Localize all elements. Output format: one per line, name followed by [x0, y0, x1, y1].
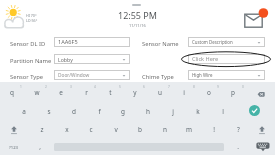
button[interactable]: z	[31, 122, 53, 136]
button[interactable]: d	[63, 104, 85, 118]
staticText: y	[133, 88, 137, 97]
staticText: Chime Type	[142, 73, 174, 81]
staticText: High Wire	[192, 72, 213, 78]
staticText: 2	[45, 85, 47, 89]
button[interactable]: .	[227, 139, 249, 153]
staticText: l	[222, 107, 224, 116]
staticText: Click Here	[192, 55, 219, 63]
button[interactable]: l	[212, 104, 234, 118]
staticText: 3	[70, 85, 72, 89]
staticText: Lobby	[58, 56, 73, 63]
button[interactable]: i	[173, 85, 195, 99]
button[interactable]: e	[50, 85, 72, 99]
button[interactable]: High Wire	[188, 70, 265, 80]
staticText: ,	[39, 142, 41, 151]
staticText: s	[47, 107, 51, 116]
button[interactable]: h	[137, 104, 159, 118]
staticText: Sensor DL ID	[10, 40, 46, 48]
staticText: e	[59, 88, 63, 97]
staticText: .	[237, 142, 239, 151]
button[interactable]: ,	[29, 139, 51, 153]
button[interactable]: w	[26, 85, 48, 99]
staticText: f	[98, 107, 101, 116]
staticText: d	[72, 107, 76, 116]
button[interactable]: Door/Window	[54, 70, 130, 80]
staticText: a	[22, 107, 26, 116]
button[interactable]: Shift	[7, 122, 21, 134]
button[interactable]: f	[88, 104, 110, 118]
button[interactable]: !	[203, 122, 225, 136]
staticText: n	[163, 125, 167, 134]
staticText: 9	[217, 85, 219, 89]
staticText: 1	[20, 85, 22, 89]
button[interactable]: m	[178, 122, 200, 136]
staticText: LO 56°	[26, 18, 38, 23]
staticText: 12:55 PM	[118, 9, 157, 21]
staticText: Door/Window	[58, 72, 90, 79]
button[interactable]: p	[222, 85, 244, 99]
button[interactable]: ?123	[5, 142, 23, 154]
staticText: 8	[193, 85, 195, 89]
staticText: m	[186, 125, 192, 134]
staticText: !	[213, 125, 215, 134]
button[interactable]: ?	[227, 122, 249, 136]
staticText: HI 70°	[26, 13, 37, 18]
staticText: j	[172, 107, 174, 116]
button[interactable]: n	[154, 122, 176, 136]
staticText: h	[146, 107, 150, 116]
button[interactable]: 1AA6F5	[54, 37, 130, 47]
staticText: o	[207, 88, 211, 97]
button[interactable]: t	[99, 85, 121, 99]
button[interactable]: Enter	[249, 105, 260, 116]
button[interactable]: o	[198, 85, 220, 99]
button[interactable]: g	[112, 104, 134, 118]
button[interactable]: Click Here	[188, 54, 265, 64]
staticText: i	[183, 88, 185, 97]
button[interactable]: c	[80, 122, 102, 136]
staticText: c	[89, 125, 93, 134]
staticText: r	[85, 88, 88, 97]
staticText: 5	[119, 85, 121, 89]
staticText: q	[10, 88, 14, 97]
staticText: g	[121, 107, 125, 116]
button[interactable]: Messages	[243, 7, 269, 29]
staticText: w	[34, 88, 40, 97]
button[interactable]: k	[187, 104, 209, 118]
button[interactable]: Custom Description	[188, 37, 265, 47]
staticText: ?123	[9, 145, 19, 151]
staticText: v	[114, 125, 118, 134]
button[interactable]: j	[162, 104, 184, 118]
staticText: ?	[237, 125, 240, 134]
staticText: Sensor Type	[10, 73, 44, 81]
button[interactable]: v	[105, 122, 127, 136]
button[interactable]: x	[56, 122, 78, 136]
staticText: p	[231, 88, 235, 97]
staticText: 11/11/16	[129, 23, 146, 28]
button[interactable]: Weather	[1, 2, 28, 29]
button[interactable]: a	[13, 104, 35, 118]
staticText: 7	[168, 85, 170, 89]
staticText: x	[65, 125, 69, 134]
button[interactable]: b	[129, 122, 151, 136]
button[interactable]: Lobby	[54, 54, 130, 64]
button[interactable]: s	[38, 104, 60, 118]
staticText: k	[196, 107, 200, 116]
staticText: z	[40, 125, 44, 134]
button[interactable]: q	[1, 85, 23, 99]
button[interactable]: u	[149, 85, 171, 99]
staticText: Sensor Name	[142, 40, 179, 48]
button[interactable]: Backspace	[251, 85, 271, 99]
staticText: 6	[143, 85, 145, 89]
staticText: 0	[242, 85, 244, 89]
button[interactable]: r	[75, 85, 97, 99]
staticText: u	[158, 88, 162, 97]
staticText: Custom Description	[192, 39, 233, 45]
staticText: 1AA6F5	[58, 38, 78, 46]
staticText: 4	[94, 85, 96, 89]
button[interactable]: Change keyboard	[255, 139, 271, 154]
button[interactable]: y	[124, 85, 146, 99]
staticText: b	[138, 125, 142, 134]
button[interactable]: More options	[255, 122, 269, 134]
staticText: Partition Name	[10, 57, 52, 65]
